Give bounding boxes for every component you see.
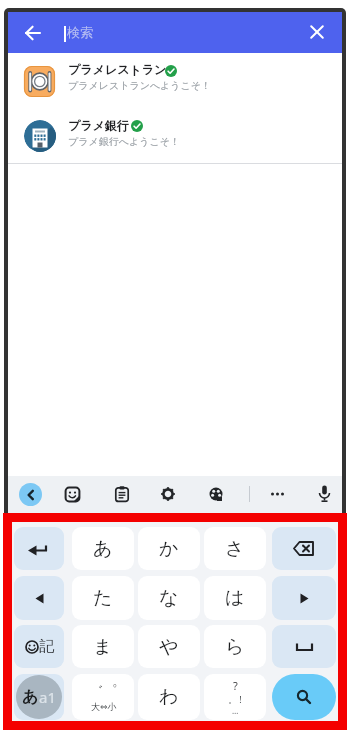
button[interactable]: わ [138,674,200,720]
staticText: は [225,586,245,610]
button[interactable] [272,527,336,570]
staticText: あ [22,687,39,707]
staticText: ? [233,678,238,693]
button[interactable] [318,485,331,503]
button[interactable]: か [138,527,200,570]
button[interactable]: ら [204,625,266,668]
staticText: た [93,586,113,610]
button[interactable] [272,625,336,668]
button[interactable]: ? [204,674,266,720]
button[interactable] [24,24,42,42]
button[interactable] [270,491,285,497]
staticText: あ [93,537,113,561]
button[interactable] [14,576,64,620]
staticText: プラメ銀行 [68,118,129,133]
button[interactable] [65,487,80,502]
button[interactable]: あ [14,674,64,720]
button[interactable] [209,487,224,502]
button[interactable]: ゛゜ [72,674,134,720]
staticText: 記 [39,637,54,656]
button[interactable] [272,674,336,720]
staticText: 大⇔小 [91,701,117,712]
staticText: a1 [39,687,56,707]
staticText: … [232,705,239,716]
staticText: わ [159,685,179,709]
staticText: か [159,537,179,561]
staticText: プラメ銀行へようこそ！ [68,135,180,148]
button[interactable]: や [138,625,200,668]
staticText: 。 ! [228,693,242,705]
staticText: ま [93,635,113,659]
button[interactable] [115,486,129,502]
staticText: ゛゜ [89,683,118,701]
staticText: な [159,586,179,610]
button[interactable]: ま [72,625,134,668]
button[interactable]: あ [72,527,134,570]
staticText: 検索 [67,24,93,40]
button[interactable] [8,57,342,109]
staticText: さ [225,537,245,561]
staticText: ら [225,635,245,659]
staticText: や [159,635,179,659]
staticText: プラメレストランへようこそ！ [68,79,212,92]
button[interactable]: た [72,576,134,620]
button[interactable] [19,483,42,506]
button[interactable] [161,487,175,501]
button[interactable]: 記 [14,625,64,668]
button[interactable] [272,576,336,620]
staticText: プラメレストラン [68,62,167,77]
button[interactable]: は [204,576,266,620]
button[interactable]: な [138,576,200,620]
button[interactable] [14,527,64,570]
button[interactable] [8,111,342,163]
button[interactable]: さ [204,527,266,570]
button[interactable] [309,24,325,40]
